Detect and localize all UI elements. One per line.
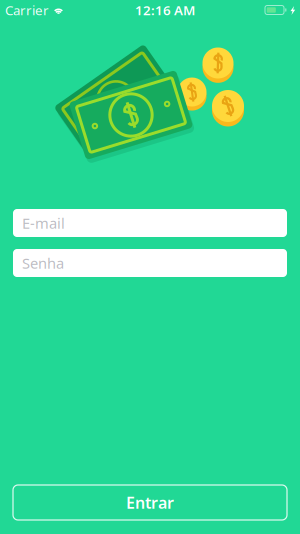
button[interactable]: Senha [13,249,287,277]
staticText: Senha [22,253,64,273]
button[interactable]: Entrar [13,485,287,520]
staticText: Carrier [5,1,49,19]
staticText: 12:16 AM [135,1,195,19]
staticText: E-mail [22,213,65,233]
button[interactable]: E-mail [13,209,287,237]
staticText: Entrar [126,492,174,513]
